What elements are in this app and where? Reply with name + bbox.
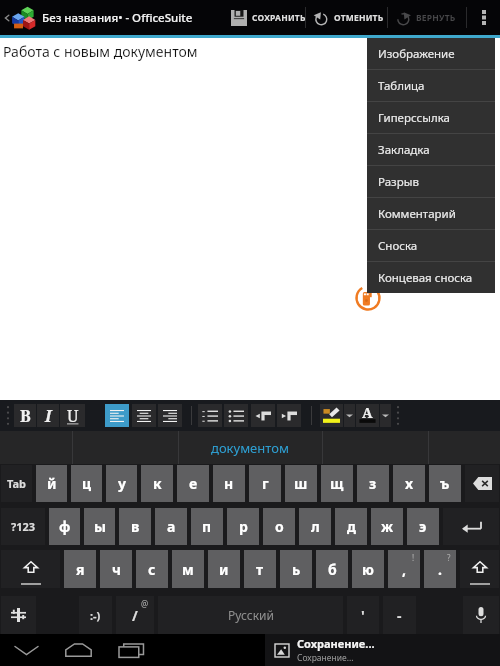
button[interactable]: U [60, 404, 85, 427]
button[interactable]: з [357, 465, 389, 502]
button[interactable]: Сохранение... [265, 634, 500, 666]
button[interactable]: ь [280, 550, 312, 588]
button[interactable]: Назад [6, 634, 46, 666]
button[interactable]: Выравнивание [105, 404, 129, 427]
button[interactable]: ф [49, 508, 80, 545]
staticText: Гиперссылка [378, 110, 450, 126]
button[interactable] [463, 596, 499, 634]
button[interactable]: Русский [158, 596, 343, 634]
button[interactable]: ж [371, 508, 403, 545]
button[interactable]: Сноска [367, 230, 495, 261]
button[interactable]: ы [84, 508, 115, 545]
button[interactable]: документом [211, 431, 289, 464]
button[interactable] [443, 508, 499, 545]
button[interactable]: ш [285, 465, 317, 502]
button[interactable] [460, 550, 499, 588]
button[interactable]: л [299, 508, 331, 545]
staticText: е [189, 474, 198, 493]
staticText: СОХРАНИТЬ [252, 12, 305, 24]
staticText: ъ [440, 474, 450, 493]
button[interactable]: т [244, 550, 276, 588]
button[interactable]: Tab [1, 465, 32, 502]
button[interactable]: э [407, 508, 439, 545]
button[interactable] [1, 596, 36, 634]
button[interactable]: о [263, 508, 295, 545]
button[interactable]: Главный экран [58, 634, 98, 666]
button[interactable]: г [249, 465, 281, 502]
button[interactable]: Без названия• - OfficeSuite [9, 0, 193, 35]
staticText: Сноска [378, 238, 418, 254]
button[interactable]: Концевая сноска [367, 262, 495, 293]
button[interactable]: б [316, 550, 348, 588]
button[interactable]: Инструмент [251, 404, 275, 427]
button[interactable]: - [383, 596, 416, 634]
button[interactable] [1, 550, 60, 588]
staticText: я [76, 560, 85, 579]
button[interactable]: Гиперссылка [367, 102, 495, 133]
button[interactable]: Таблица [367, 70, 495, 101]
button[interactable]: х [393, 465, 425, 502]
button[interactable]: ?123 [1, 508, 45, 545]
button[interactable]: B [14, 404, 36, 427]
button[interactable]: ъ [429, 465, 461, 502]
button[interactable]: п [191, 508, 223, 545]
button[interactable]: :-) [79, 596, 112, 634]
button[interactable]: р [227, 508, 259, 545]
button[interactable]: I [37, 404, 59, 427]
staticText: документом [211, 439, 289, 457]
button[interactable]: ' [347, 596, 379, 634]
staticText: Без названия• - OfficeSuite [42, 10, 193, 26]
button[interactable]: Закладка [367, 134, 495, 165]
button[interactable]: ч [100, 550, 132, 588]
button[interactable]: Ещё [467, 0, 500, 35]
button[interactable]: СОХРАНИТЬ [226, 0, 305, 35]
button[interactable]: ц [71, 465, 102, 502]
staticText: ь [292, 560, 301, 579]
button[interactable]: Цвет текста [356, 404, 379, 427]
button[interactable]: с [136, 550, 168, 588]
button[interactable]: и [208, 550, 240, 588]
staticText: Сохранение... [297, 636, 375, 651]
button[interactable]: Назад [0, 0, 14, 35]
staticText: . [438, 560, 442, 579]
button[interactable]: Изображение [367, 38, 495, 69]
button[interactable]: й [36, 465, 67, 502]
button[interactable]: ОТМЕНИТЬ [308, 0, 386, 35]
button[interactable]: д [335, 508, 367, 545]
button[interactable]: Комментарий [367, 198, 495, 229]
button[interactable]: Выравнивание [158, 404, 182, 427]
button[interactable]: Выделение цветом [320, 404, 343, 427]
button[interactable]: , [388, 550, 420, 588]
button[interactable]: в [119, 508, 151, 545]
button[interactable]: Больше [380, 404, 391, 427]
button[interactable]: н [213, 465, 245, 502]
staticText: Концевая сноска [378, 270, 473, 286]
button[interactable]: Больше [344, 404, 355, 427]
staticText: ж [381, 517, 394, 536]
button[interactable]: Недавние приложения [111, 634, 151, 666]
button[interactable]: Разрыв [367, 166, 495, 197]
staticText: Комментарий [378, 206, 456, 222]
button[interactable]: Выравнивание [132, 404, 156, 427]
button[interactable]: Инструмент [224, 404, 248, 427]
button[interactable]: а [155, 508, 187, 545]
staticText: э [419, 517, 427, 536]
button[interactable]: Инструмент [198, 404, 222, 427]
staticText: A [362, 403, 373, 422]
button[interactable]: ВЕРНУТЬ [390, 0, 464, 35]
staticText: с [148, 560, 156, 579]
button[interactable]: . [424, 550, 456, 588]
staticText: в [131, 517, 140, 536]
button[interactable]: у [106, 465, 137, 502]
button[interactable]: е [177, 465, 209, 502]
button[interactable]: щ [321, 465, 353, 502]
button[interactable]: м [172, 550, 204, 588]
button[interactable]: ю [352, 550, 384, 588]
button[interactable]: я [64, 550, 96, 588]
button[interactable]: к [141, 465, 173, 502]
staticText: к [153, 474, 162, 493]
button[interactable]: Инструмент [277, 404, 301, 427]
staticText: ы [94, 517, 106, 536]
button[interactable] [465, 465, 499, 502]
button[interactable]: / [116, 596, 154, 634]
